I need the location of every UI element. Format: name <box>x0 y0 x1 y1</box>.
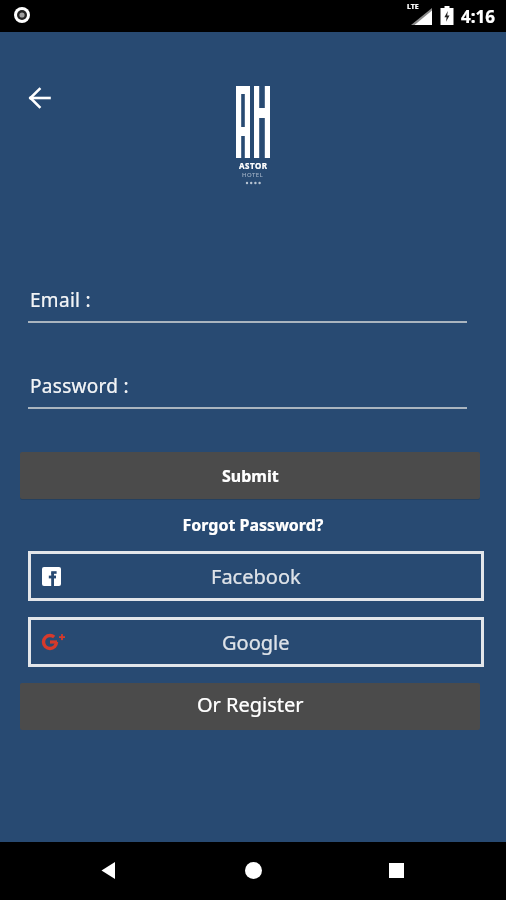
button[interactable] <box>95 856 123 884</box>
staticText: Google <box>222 629 290 656</box>
button[interactable]: Forgot Password? <box>0 514 506 536</box>
staticText: Submit <box>222 465 279 487</box>
button[interactable] <box>382 856 410 884</box>
button[interactable]: Facebook <box>28 551 484 601</box>
staticText: HOTEL <box>242 171 264 179</box>
staticText: Or Register <box>197 691 304 718</box>
staticText: LTE <box>407 2 419 12</box>
staticText: Password : <box>30 373 129 399</box>
button[interactable] <box>22 80 58 116</box>
button[interactable]: Or Register <box>20 683 480 730</box>
staticText: ASTOR <box>239 160 268 171</box>
button[interactable]: Google <box>28 617 484 667</box>
staticText: Email : <box>30 287 91 313</box>
button[interactable]: Submit <box>20 452 480 499</box>
staticText: 4:16 <box>461 5 495 28</box>
button[interactable] <box>239 856 267 884</box>
staticText: Facebook <box>211 563 301 590</box>
